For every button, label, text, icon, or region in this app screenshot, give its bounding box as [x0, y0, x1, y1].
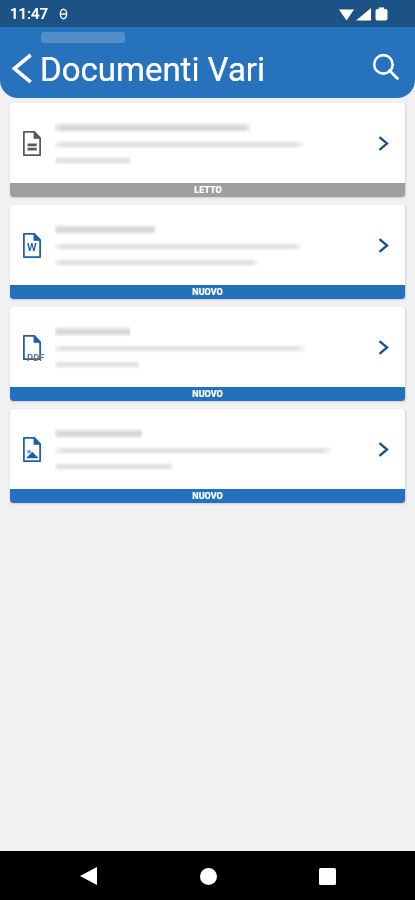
button[interactable]: Back [68, 856, 108, 896]
staticText: PDF [27, 352, 45, 363]
button[interactable]: Back [3, 50, 39, 86]
staticText: Documenti Vari [40, 50, 266, 89]
button[interactable]: Search [366, 47, 406, 87]
button[interactable]: PDF [10, 307, 405, 401]
button[interactable]: NUOVO [10, 409, 405, 503]
staticText: W [27, 241, 37, 254]
button[interactable]: Recents [307, 856, 347, 896]
button[interactable]: W [10, 205, 405, 299]
staticText: LETTO [194, 185, 222, 196]
staticText: 11:47 [10, 5, 49, 23]
staticText: NUOVO [192, 287, 223, 298]
button[interactable]: LETTO [10, 103, 405, 197]
button[interactable]: Home [188, 856, 228, 896]
staticText: NUOVO [192, 389, 223, 400]
staticText: NUOVO [192, 491, 223, 502]
